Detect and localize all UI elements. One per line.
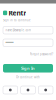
- staticText: ••••••••: [5, 41, 13, 44]
- button[interactable]: Sign in with Facebook: [38, 86, 53, 94]
- staticText: Sign In: [21, 66, 35, 71]
- staticText: Or continue with: [16, 75, 40, 79]
- staticText: name@example.com: [5, 28, 30, 32]
- button[interactable]: Sign in with Google: [21, 86, 35, 94]
- staticText: Sign in to continue: [3, 19, 31, 22]
- button[interactable]: Forgot password?: [30, 52, 53, 56]
- button[interactable]: Sign in with Apple: [3, 86, 18, 94]
- staticText: Rentr: [8, 8, 26, 17]
- button[interactable]: Sign In: [3, 64, 53, 72]
- staticText: Forgot password?: [30, 52, 53, 56]
